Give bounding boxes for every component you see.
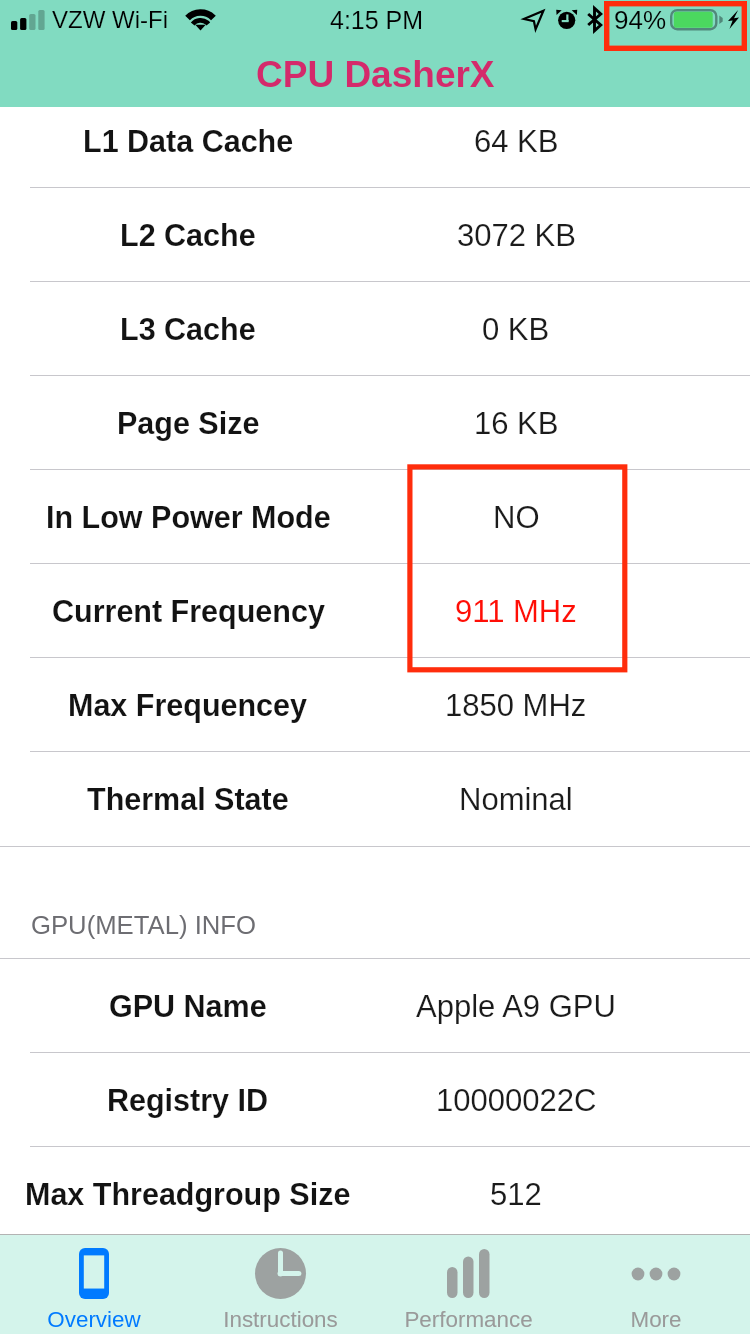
staticText: Overview <box>47 1307 141 1332</box>
staticText: In Low Power Mode <box>46 500 331 534</box>
button[interactable]: Overview <box>0 1235 187 1334</box>
staticText: Page Size <box>117 406 260 440</box>
staticText: 911 MHz <box>455 594 577 629</box>
staticText: VZW Wi-Fi <box>52 6 168 33</box>
button[interactable]: Performance <box>374 1235 562 1334</box>
button[interactable]: Max Threadgroup Size <box>0 1147 750 1241</box>
staticText: L3 Cache <box>120 312 256 346</box>
staticText: NO <box>493 500 540 535</box>
staticText: Max Threadgroup Size <box>25 1177 351 1211</box>
staticText: GPU(METAL) INFO <box>31 911 257 940</box>
staticText: 1850 MHz <box>445 688 587 723</box>
staticText: 64 KB <box>474 124 559 159</box>
staticText: Instructions <box>223 1307 338 1332</box>
button[interactable]: L1 Data Cache <box>0 107 750 188</box>
staticText: Performance <box>404 1307 533 1332</box>
staticText: Registry ID <box>107 1083 269 1117</box>
staticText: Nominal <box>459 782 573 817</box>
staticText: 16 KB <box>474 406 559 441</box>
staticText: 0 KB <box>482 312 550 347</box>
staticText: Current Frequency <box>52 594 325 628</box>
button[interactable]: Page Size <box>0 376 750 470</box>
staticText: 10000022C <box>436 1083 597 1118</box>
staticText: GPU Name <box>109 989 267 1023</box>
button[interactable]: Thermal State <box>0 752 750 846</box>
staticText: L1 Data Cache <box>83 124 294 158</box>
staticText: CPU DasherX <box>256 54 495 95</box>
staticText: 94% <box>614 5 667 34</box>
button[interactable]: More <box>562 1235 750 1334</box>
button[interactable]: L2 Cache <box>0 188 750 282</box>
button[interactable]: Max Frequencey <box>0 658 750 752</box>
staticText: L2 Cache <box>120 218 256 252</box>
staticText: 4:15 PM <box>330 6 424 34</box>
staticText: 512 <box>490 1177 542 1212</box>
staticText: More <box>630 1307 682 1332</box>
staticText: Max Frequencey <box>68 688 308 722</box>
button[interactable]: In Low Power Mode <box>0 470 750 564</box>
staticText: Apple A9 GPU <box>416 989 616 1024</box>
button[interactable]: GPU Name <box>0 959 750 1053</box>
staticText: Thermal State <box>87 782 289 816</box>
staticText: 3072 KB <box>457 218 576 253</box>
button[interactable]: Instructions <box>187 1235 374 1334</box>
button[interactable]: Current Frequency <box>0 564 750 658</box>
button[interactable]: L3 Cache <box>0 282 750 376</box>
button[interactable]: Registry ID <box>0 1053 750 1147</box>
